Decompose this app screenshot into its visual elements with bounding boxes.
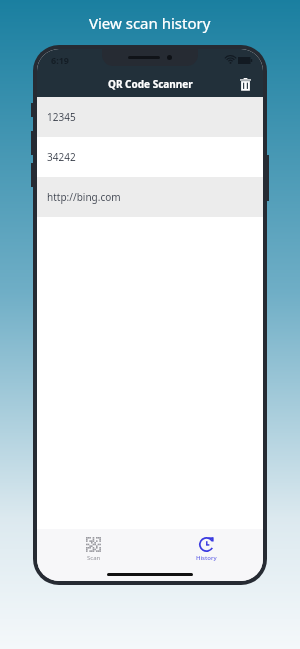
staticText: 12345 [47,110,76,124]
button[interactable]: http://bing.com [37,177,263,217]
staticText: History [196,554,217,562]
button[interactable]: History [186,535,227,564]
button[interactable]: 12345 [37,97,263,137]
button[interactable]: Delete history [235,74,255,94]
staticText: 6:19 [51,54,69,66]
staticText: 34242 [47,150,76,164]
staticText: View scan history [89,13,211,33]
button[interactable]: Scan [76,535,111,564]
staticText: Scan [87,554,101,562]
staticText: QR Code Scanner [108,77,193,91]
button[interactable]: 34242 [37,137,263,177]
staticText: http://bing.com [47,190,121,204]
